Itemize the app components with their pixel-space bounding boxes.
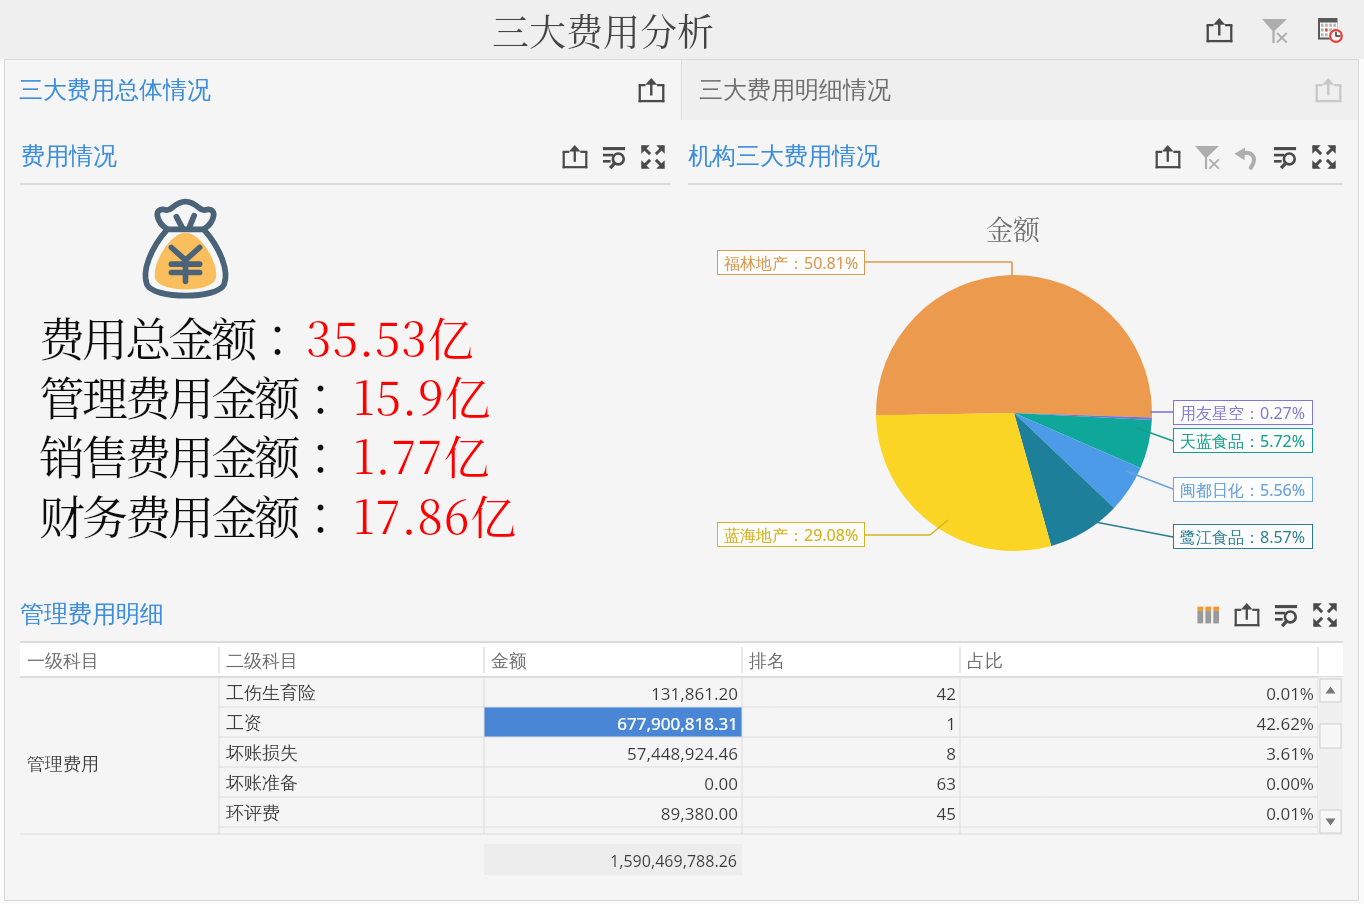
staticText: 金额 [491,650,527,673]
staticText: 57,448,924.46 [484,742,738,765]
staticText: 131,861.20 [484,682,738,705]
button[interactable]: Full screen [1308,141,1339,172]
staticText: 45 [742,802,956,825]
button[interactable]: Undo [1230,141,1261,172]
staticText: 排名 [749,650,785,673]
staticText: 占比 [967,650,1003,673]
button[interactable]: Export [1152,141,1183,172]
staticText: 0.01% [960,802,1314,825]
button[interactable]: 用友星空：0.27% [1173,400,1313,425]
staticText: 闽都日化：5.56% [1180,479,1306,501]
staticText: 工伤生育险 [226,682,316,705]
staticText: 管理费用明细 [20,599,164,629]
staticText: 17.86亿 [353,481,518,547]
staticText: 蓝海地产：29.08% [724,524,859,546]
button[interactable]: 鹭江食品：8.57% [1173,524,1313,549]
staticText: 一级科目 [27,650,99,673]
staticText: 677,900,818.31 [484,712,738,735]
staticText: 费用情况 [21,141,117,171]
button[interactable]: 三大费用明细情况 [682,60,1358,120]
staticText: 用友星空：0.27% [1180,402,1306,424]
staticText: 89,380.00 [484,802,738,825]
button[interactable]: Export [1231,599,1262,630]
staticText: 环评费 [226,802,280,825]
staticText: 3.61% [960,742,1314,765]
staticText: 0.00 [484,772,738,795]
staticText: 三大费用总体情况 [19,75,211,105]
button[interactable]: Export [1200,11,1238,49]
staticText: 坏账损失 [226,742,298,765]
button[interactable]: Search filter [1270,599,1301,630]
button[interactable]: 闽都日化：5.56% [1173,477,1313,502]
staticText: 管理费用金额： [39,362,341,428]
staticText: 财务费用金额： [39,481,341,547]
button[interactable]: Schedule [1311,11,1349,49]
staticText: 金额 [986,209,1040,248]
staticText: 42.62% [960,712,1314,735]
button[interactable]: Search filter [598,141,629,172]
button[interactable]: Export [634,73,668,107]
button[interactable]: 福林地产：50.81% [717,250,865,275]
button[interactable]: Clear filter [1191,141,1222,172]
staticText: 天蓝食品：5.72% [1180,430,1306,452]
staticText: 三大费用明细情况 [699,75,891,105]
staticText: 8 [742,742,956,765]
staticText: 15.9亿 [353,362,492,428]
staticText: 三大费用分析 [492,3,714,56]
button[interactable]: Export [1311,73,1345,107]
button[interactable]: Full screen [637,141,668,172]
staticText: 42 [742,682,956,705]
staticText: 0.01% [960,682,1314,705]
staticText: 35.53亿 [306,303,475,369]
staticText: 销售费用金额： [39,421,341,487]
button[interactable]: Chart [1192,599,1223,630]
staticText: 1.77亿 [353,421,491,487]
button[interactable]: 三大费用总体情况 [5,60,681,120]
staticText: 机构三大费用情况 [688,141,880,171]
staticText: 坏账准备 [226,772,298,795]
staticText: 管理费用 [27,753,99,776]
staticText: 鹭江食品：8.57% [1180,526,1306,548]
button[interactable]: Search filter [1269,141,1300,172]
staticText: 费用总金额： [39,303,298,369]
button[interactable]: Export [559,141,590,172]
button[interactable]: 天蓝食品：5.72% [1173,428,1313,453]
staticText: 工资 [226,712,262,735]
staticText: 福林地产：50.81% [724,252,859,274]
button[interactable]: Clear filter [1255,11,1293,49]
staticText: 1,590,469,788.26 [484,850,737,872]
staticText: 63 [742,772,956,795]
staticText: 二级科目 [226,650,298,673]
staticText: 1 [742,712,956,735]
button[interactable]: 蓝海地产：29.08% [717,522,865,547]
button[interactable]: Full screen [1309,599,1340,630]
staticText: 0.00% [960,772,1314,795]
